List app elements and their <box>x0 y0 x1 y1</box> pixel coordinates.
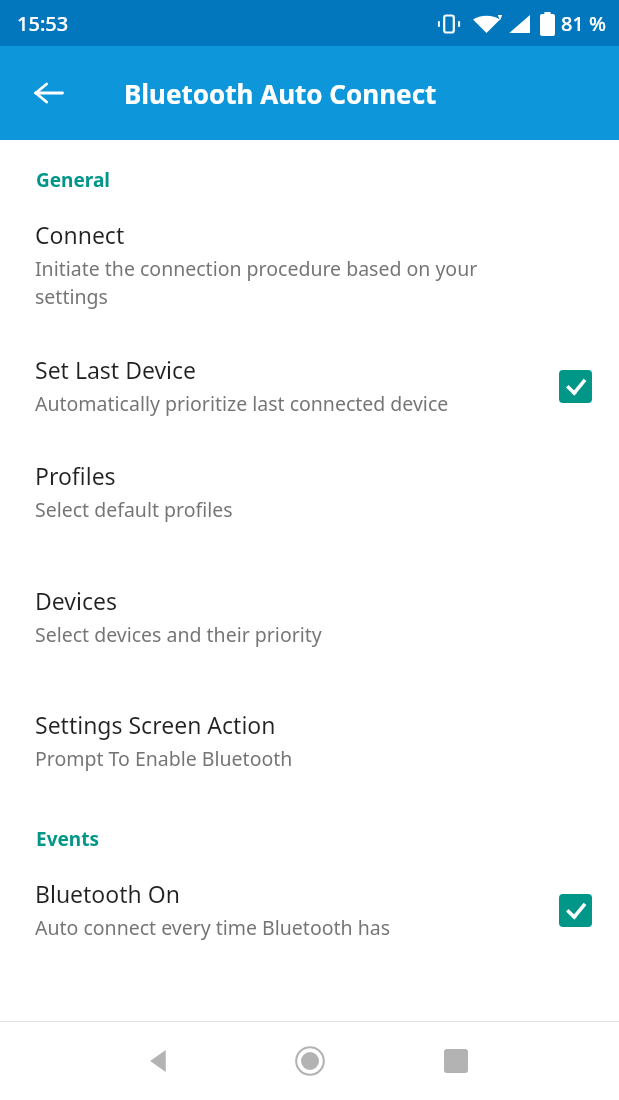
button[interactable]: Set Last Device toggle <box>551 362 599 410</box>
staticText: Events <box>36 826 99 852</box>
staticText: Auto connect every time Bluetooth has <box>35 914 390 941</box>
button[interactable]: Set Last Device <box>0 354 619 417</box>
button[interactable]: Devices <box>0 585 619 648</box>
button[interactable]: Bluetooth On <box>0 878 619 941</box>
staticText: Select devices and their priority <box>35 621 322 648</box>
staticText: Bluetooth Auto Connect <box>124 76 437 111</box>
staticText: 81 % <box>561 10 607 37</box>
staticText: Prompt To Enable Bluetooth <box>35 745 293 772</box>
staticText: Settings Screen Action <box>35 709 276 740</box>
button[interactable]: Home <box>280 1031 340 1091</box>
button[interactable]: Connect <box>0 219 619 310</box>
button[interactable]: General <box>0 167 619 193</box>
button[interactable]: Bluetooth On toggle <box>551 886 599 934</box>
button[interactable]: Settings Screen Action <box>0 709 619 772</box>
staticText: Select default profiles <box>35 496 233 523</box>
staticText: Connect <box>35 219 125 250</box>
button[interactable]: Profiles <box>0 460 619 523</box>
staticText: Profiles <box>35 460 116 491</box>
staticText: General <box>36 167 110 193</box>
button[interactable]: Events <box>0 826 619 852</box>
button[interactable]: Back <box>19 63 79 123</box>
staticText: Automatically prioritize last connected … <box>35 390 449 417</box>
staticText: Bluetooth On <box>35 878 180 909</box>
button[interactable]: Recent apps <box>426 1031 486 1091</box>
staticText: Initiate the connection procedure based … <box>35 255 543 310</box>
staticText: 15:53 <box>17 10 69 37</box>
button[interactable]: Back <box>130 1031 190 1091</box>
staticText: Set Last Device <box>35 354 197 385</box>
staticText: Devices <box>35 585 117 616</box>
